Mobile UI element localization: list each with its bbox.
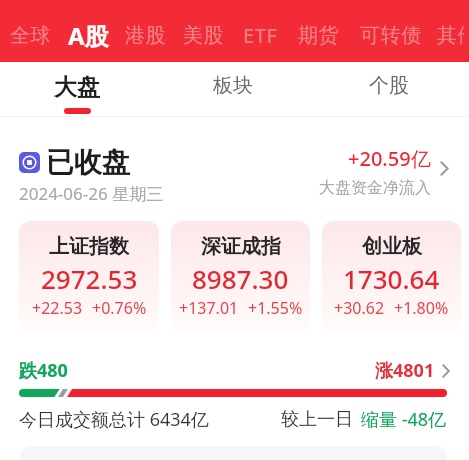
staticText: 板块	[213, 73, 253, 98]
staticText: +1.55%	[248, 297, 303, 319]
button[interactable]: 创业板	[322, 221, 461, 332]
staticText: 可转债	[360, 23, 422, 48]
staticText: 美股	[183, 23, 225, 48]
staticText: A股	[68, 19, 109, 52]
staticText: 2024-06-26 星期三	[19, 182, 164, 205]
button[interactable]: 深证成指	[171, 221, 310, 332]
staticText: 缩量 -48亿	[361, 407, 447, 432]
button[interactable]: 上证指数	[19, 221, 159, 332]
staticText: ETF	[243, 22, 278, 49]
staticText: 较上一日	[281, 408, 353, 431]
button[interactable]: 大盘	[0, 62, 157, 117]
button[interactable]: 期货	[288, 0, 350, 62]
staticText: +20.59亿	[348, 145, 431, 172]
staticText: 8987.30	[192, 261, 289, 296]
staticText: 全球	[10, 23, 52, 48]
staticText: 今日成交额总计 6434亿	[19, 407, 209, 432]
staticText: 创业板	[362, 234, 422, 259]
staticText: 2972.53	[41, 261, 138, 296]
button[interactable]: 涨跌详情	[442, 364, 450, 378]
staticText: 个股	[369, 73, 409, 98]
button[interactable]: A股	[60, 0, 117, 62]
staticText: +137.01	[179, 297, 239, 319]
staticText: 1730.64	[343, 261, 440, 296]
staticText: 其他	[437, 23, 464, 48]
button[interactable]: 美股	[175, 0, 233, 62]
button[interactable]: 全球	[2, 0, 60, 62]
staticText: 已收盘	[46, 145, 130, 180]
button[interactable]: 涨4801	[375, 358, 450, 383]
staticText: 深证成指	[201, 234, 281, 259]
button[interactable]: 大盘资金净流入详情	[440, 161, 449, 176]
button[interactable]: 板块	[157, 62, 313, 117]
staticText: 期货	[298, 23, 340, 48]
button[interactable]: 其他	[432, 0, 469, 62]
staticText: 涨4801	[375, 358, 435, 383]
staticText: 上证指数	[49, 234, 129, 259]
button[interactable]: ETF	[233, 0, 288, 62]
staticText: +0.76%	[92, 297, 147, 319]
staticText: +22.53	[32, 297, 83, 319]
staticText: 大盘资金净流入	[319, 178, 431, 198]
staticText: +1.80%	[394, 297, 449, 319]
staticText: 大盘	[54, 73, 100, 102]
button[interactable]: 港股	[117, 0, 175, 62]
staticText: 港股	[125, 23, 167, 48]
staticText: +30.62	[334, 297, 385, 319]
staticText: 跌480	[19, 358, 68, 383]
button[interactable]: 个股	[313, 62, 469, 117]
button[interactable]: 可转债	[350, 0, 432, 62]
